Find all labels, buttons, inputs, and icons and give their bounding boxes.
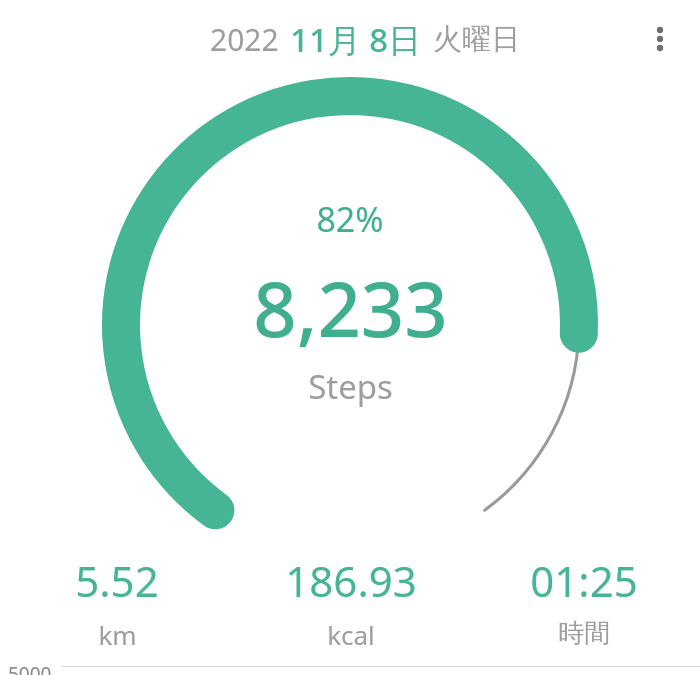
staticText: 時間 [558, 617, 610, 650]
staticText: 82% [316, 196, 384, 242]
staticText: 2022 [210, 19, 279, 60]
staticText: 火曜日 [433, 21, 520, 58]
staticText: 01:25 [530, 552, 638, 609]
staticText: Steps [308, 364, 393, 409]
staticText: 5000 [8, 661, 52, 675]
staticText: kcal [327, 617, 375, 652]
button[interactable]: 01:25 [467, 548, 700, 654]
button[interactable]: 186.93 [234, 548, 467, 656]
staticText: km [98, 617, 137, 652]
staticText: 11月 8日 [290, 17, 422, 62]
staticText: 5.52 [75, 552, 159, 609]
button[interactable]: 5.52 [0, 548, 234, 656]
staticText: 8,233 [253, 256, 448, 360]
staticText: 186.93 [285, 552, 417, 609]
button[interactable]: More options [632, 11, 688, 67]
